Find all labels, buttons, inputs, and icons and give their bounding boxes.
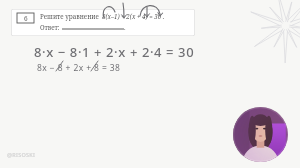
staticText: @RISOSKI: [7, 151, 36, 158]
staticText: 8x − 8 + 2x + 8 = 38: [37, 62, 121, 74]
staticText: Ответ:: [40, 23, 60, 31]
button[interactable]: 6: [11, 9, 195, 36]
button[interactable]: Presenter video: [233, 107, 288, 162]
staticText: 6: [24, 14, 28, 23]
staticText: Решите уравнение: [40, 12, 99, 20]
staticText: .: [124, 23, 126, 31]
button[interactable]: 6: [17, 13, 34, 23]
staticText: 8·x − 8·1 + 2·x + 2·4 = 30: [34, 43, 195, 61]
staticText: 8(x–1) + 2(x + 4) = 30 .: [102, 12, 165, 20]
